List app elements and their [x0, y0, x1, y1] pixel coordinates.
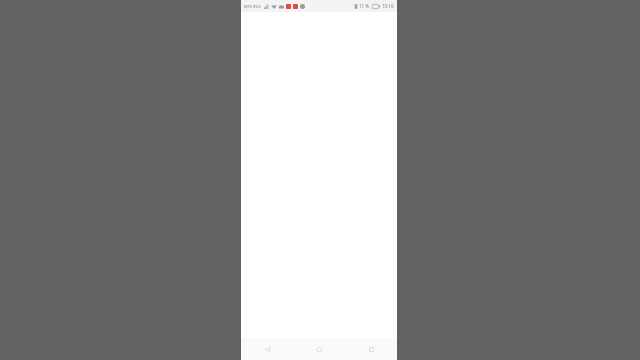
button[interactable]: Recent apps [345, 338, 397, 360]
staticText: 15:16 [382, 3, 394, 9]
staticText: MTS RUS [244, 4, 261, 9]
staticText: 11 % [359, 3, 370, 9]
